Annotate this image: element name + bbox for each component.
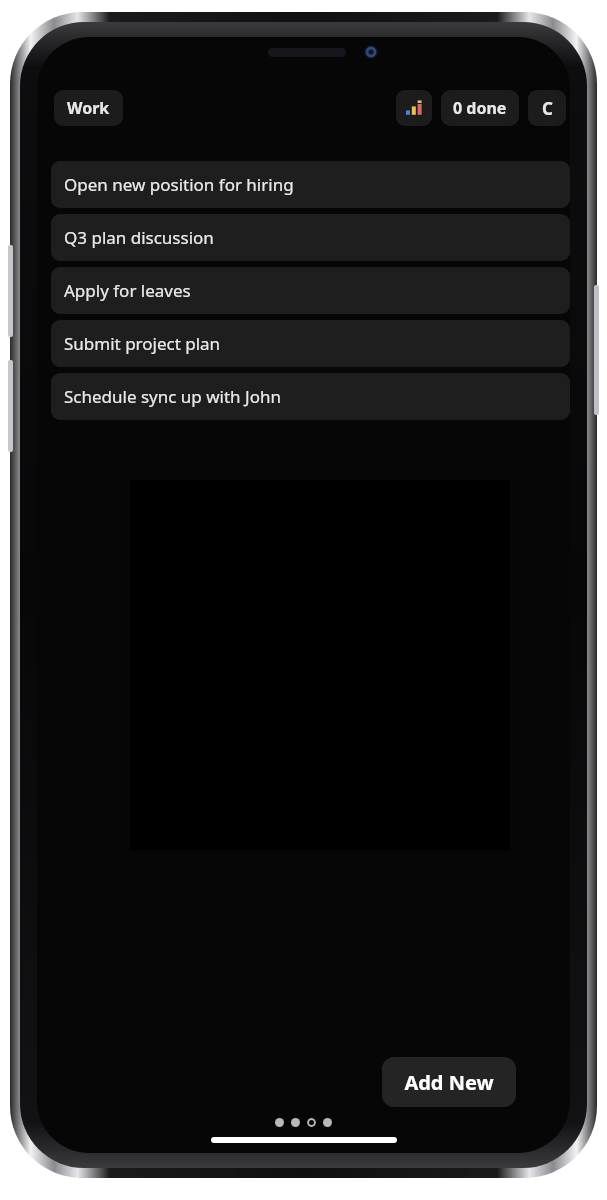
staticText: Apply for leaves — [64, 279, 191, 302]
staticText: Schedule sync up with John — [64, 385, 281, 408]
staticText: Open new position for hiring — [64, 173, 294, 196]
button[interactable]: Work — [54, 90, 123, 126]
staticText: 0 done — [453, 97, 507, 119]
button[interactable]: Q3 plan discussion — [51, 214, 570, 261]
button[interactable]: C — [528, 90, 566, 126]
staticText: Add New — [404, 1069, 494, 1096]
button[interactable]: Submit project plan — [51, 320, 570, 367]
staticText: C — [542, 97, 553, 120]
button[interactable]: Apply for leaves — [51, 267, 570, 314]
staticText: Submit project plan — [64, 332, 221, 355]
button[interactable]: Open new position for hiring — [51, 161, 570, 208]
button[interactable]: Schedule sync up with John — [51, 373, 570, 420]
staticText: Q3 plan discussion — [64, 226, 214, 249]
staticText: Work — [67, 97, 110, 119]
button[interactable]: 0 done — [441, 90, 519, 126]
button[interactable]: Add New — [382, 1057, 516, 1107]
button[interactable]: Statistics — [396, 90, 432, 126]
